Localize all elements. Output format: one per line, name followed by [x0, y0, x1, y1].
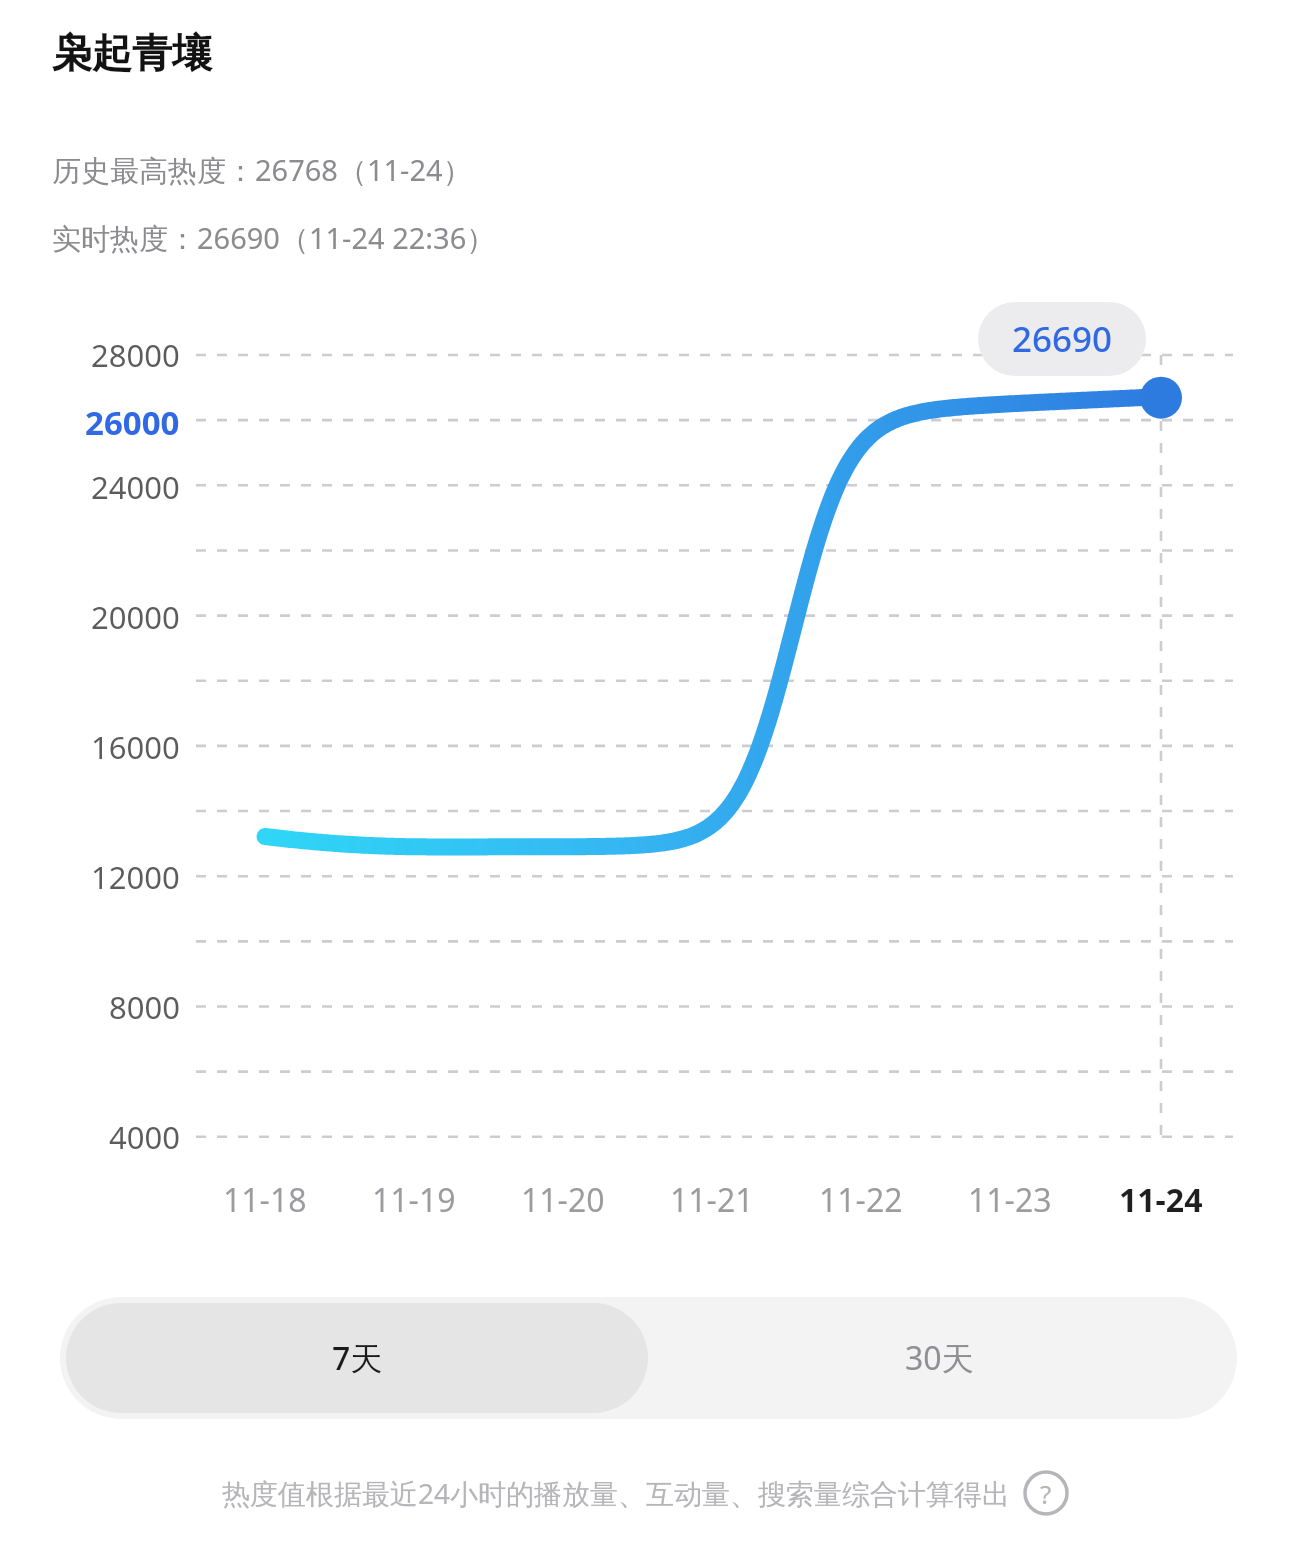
staticText: 28000	[91, 334, 180, 376]
staticText: 实时热度：26690（11-24 22:36）	[52, 218, 496, 258]
staticText: 8000	[109, 986, 180, 1028]
staticText: 11-21	[670, 1178, 754, 1222]
staticText: 11-24	[1119, 1178, 1203, 1222]
staticText: 16000	[91, 726, 180, 768]
staticText: 热度值根据最近24小时的播放量、互动量、搜索量综合计算得出	[222, 1474, 1011, 1512]
staticText: 7天	[332, 1336, 383, 1380]
staticText: 11-22	[819, 1178, 903, 1222]
staticText: 11-23	[968, 1178, 1052, 1222]
button[interactable]: 30天	[648, 1303, 1231, 1413]
staticText: 11-19	[372, 1178, 456, 1222]
staticText: 4000	[109, 1116, 180, 1158]
staticText: 20000	[91, 596, 180, 638]
staticText: 历史最高热度：26768（11-24）	[52, 150, 472, 190]
button[interactable]: 热度说明	[1023, 1470, 1069, 1516]
staticText: 26690	[1012, 315, 1113, 363]
staticText: 12000	[91, 856, 180, 898]
button[interactable]: 7天	[66, 1303, 648, 1413]
staticText: 11-18	[223, 1178, 307, 1222]
staticText: 11-20	[521, 1178, 605, 1222]
staticText: 30天	[905, 1336, 974, 1380]
staticText: 26000	[85, 400, 180, 445]
staticText: 枭起青壤	[52, 28, 212, 78]
staticText: ?	[1040, 1476, 1052, 1511]
staticText: 24000	[91, 466, 180, 508]
